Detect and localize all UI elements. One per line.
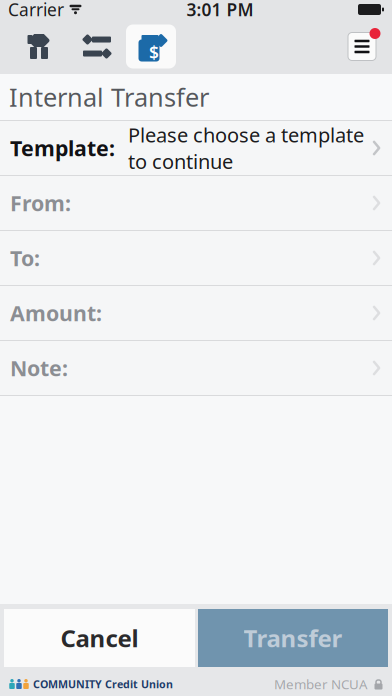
staticText: Internal Transfer [9, 80, 209, 114]
button[interactable]: Note: [0, 341, 392, 395]
staticText: Amount: [10, 299, 102, 327]
staticText: From: [10, 189, 71, 217]
button[interactable]: From: [0, 176, 392, 230]
button[interactable]: Menu [338, 21, 386, 71]
button[interactable]: Transfer [198, 609, 388, 667]
button[interactable]: Cancel [4, 609, 195, 667]
button[interactable]: Amount: [0, 286, 392, 340]
staticText: Note: [10, 354, 68, 382]
button[interactable]: Internal Transfer [124, 21, 178, 71]
button[interactable]: To: [0, 231, 392, 285]
staticText: Transfer [243, 622, 342, 654]
button[interactable]: Template: [0, 121, 392, 175]
staticText: To: [10, 244, 40, 272]
staticText: 3:01 PM [186, 0, 253, 21]
button[interactable]: Transfers [70, 21, 124, 71]
staticText: Carrier [8, 0, 64, 21]
staticText: $ [149, 41, 159, 64]
staticText: Cancel [60, 622, 138, 654]
staticText: Please choose a template to continue [128, 121, 364, 174]
staticText: Credit Union [102, 677, 173, 691]
staticText: COMMUNITY [33, 677, 102, 691]
button[interactable]: Home [8, 21, 70, 71]
staticText: Template: [10, 134, 115, 162]
staticText: Member NCUA [274, 675, 368, 693]
